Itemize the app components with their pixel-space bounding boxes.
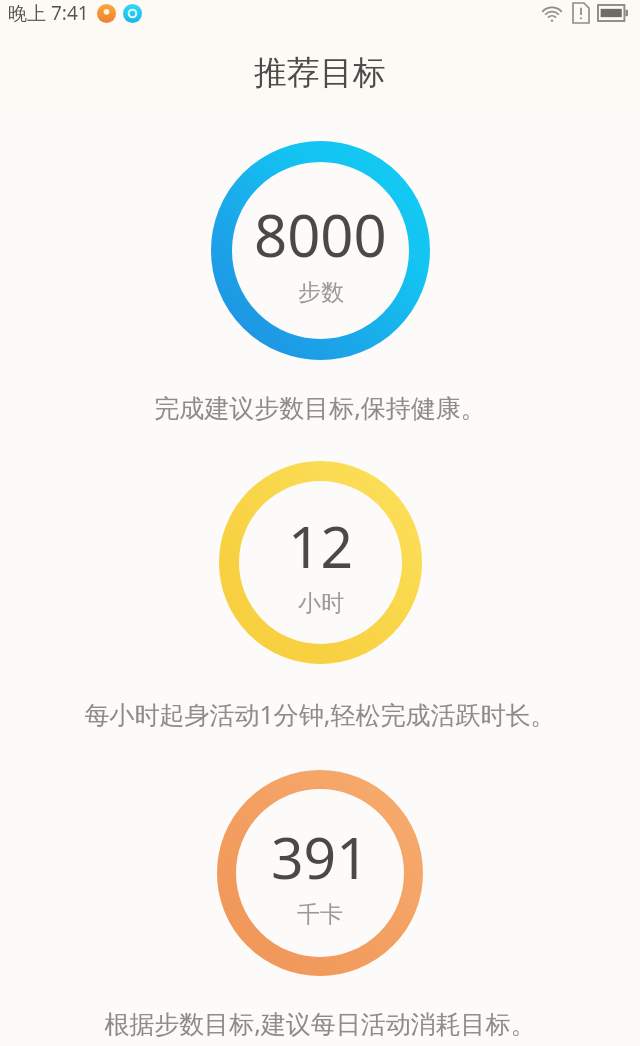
staticText: 8000 bbox=[254, 195, 387, 274]
staticText: 完成建议步数目标,保持健康。 bbox=[20, 390, 620, 424]
staticText: 每小时起身活动1分钟,轻松完成活跃时长。 bbox=[20, 697, 620, 731]
button[interactable]: 8000 bbox=[0, 141, 640, 424]
staticText: 步数 bbox=[298, 278, 344, 307]
staticText: 推荐目标 bbox=[254, 52, 386, 94]
staticText: 小时 bbox=[298, 589, 344, 618]
staticText: 千卡 bbox=[297, 900, 343, 929]
staticText: 根据步数目标,建议每日活动消耗目标。 bbox=[20, 1006, 620, 1040]
staticText: 391 bbox=[271, 818, 369, 896]
staticText: 晚上 7:41 bbox=[8, 0, 89, 26]
button[interactable]: 391 bbox=[0, 770, 640, 1040]
staticText: 12 bbox=[288, 507, 354, 585]
button[interactable]: 12 bbox=[0, 461, 640, 731]
